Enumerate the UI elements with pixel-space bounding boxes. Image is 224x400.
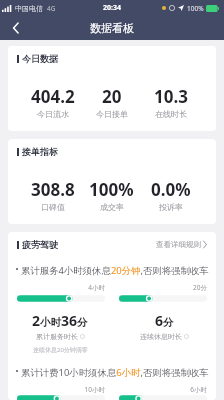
staticText: 口碑值 (41, 202, 65, 212)
staticText: 累计计费10小时须休息6小时,否则将强制收车 (21, 366, 209, 379)
staticText: 疲劳驾驶 (22, 239, 58, 250)
staticText: 在线时长 (155, 109, 187, 119)
staticText: 接单指标 (22, 146, 58, 157)
staticText: 查看详细规则 (156, 240, 201, 249)
staticText: 累计服务时长 (36, 332, 78, 341)
staticText: 100% (187, 4, 204, 13)
staticText: 20 (102, 85, 122, 108)
staticText: 10小时 (17, 385, 105, 394)
staticText: 今日数据 (22, 53, 58, 64)
staticText: 20:34 (103, 3, 121, 13)
staticText: 6分 (155, 311, 174, 330)
staticText: 20分 (119, 283, 207, 292)
staticText: 投诉率 (159, 202, 183, 212)
staticText: 308.8 (31, 178, 75, 201)
staticText: 6小时 (119, 385, 207, 394)
staticText: 连续休息20分钟清零 (33, 346, 88, 354)
staticText: 累计服务4小时须休息20分钟,否则将强制收车 (21, 264, 209, 277)
staticText: 中国电信 (15, 4, 43, 13)
staticText: 2小时36分 (32, 311, 88, 330)
staticText: 100% (89, 178, 134, 201)
staticText: 4G (47, 4, 56, 13)
staticText: 404.2 (31, 85, 75, 108)
staticText: 今日流水 (37, 109, 69, 119)
staticText: 10.3 (154, 85, 188, 108)
staticText: 4小时 (17, 283, 105, 292)
button[interactable]: 查看详细规则 (156, 240, 207, 249)
staticText: 今日接单 (96, 109, 128, 119)
button[interactable]: Back (0, 16, 32, 40)
staticText: 0.0% (151, 178, 191, 201)
staticText: 成交率 (100, 202, 124, 212)
staticText: 数据看板 (90, 21, 134, 35)
staticText: 连续休息时长 (140, 332, 182, 341)
